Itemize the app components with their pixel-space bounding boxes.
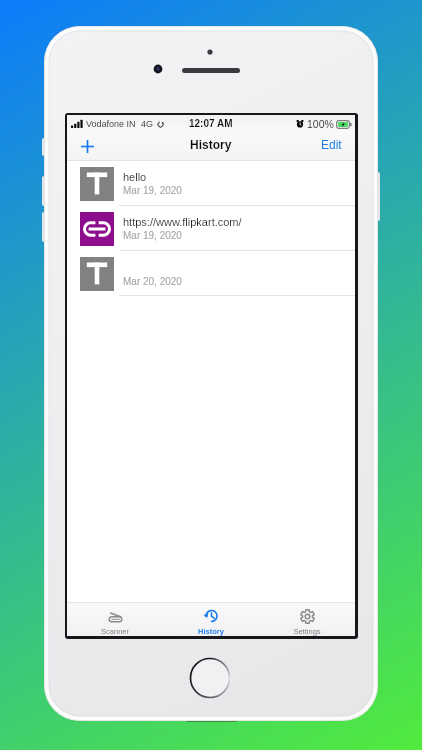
button[interactable]: History <box>163 602 259 636</box>
staticText: Mar 19, 2020 <box>123 230 182 241</box>
staticText: History <box>198 627 224 635</box>
button[interactable]: hello <box>67 161 355 206</box>
staticText: Edit <box>321 138 342 151</box>
staticText: 100% <box>307 118 334 130</box>
button[interactable]: Scanner <box>67 602 163 636</box>
staticText: Vodafone IN <box>86 119 136 129</box>
staticText: Mar 20, 2020 <box>123 276 182 287</box>
staticText: Mar 19, 2020 <box>123 185 182 196</box>
button[interactable]: Add <box>73 132 101 160</box>
button[interactable]: Settings <box>259 602 355 636</box>
staticText: hello <box>123 171 147 183</box>
button[interactable]: Mar 20, 2020 <box>67 251 355 296</box>
staticText: Scanner <box>101 627 129 635</box>
staticText: History <box>190 138 232 151</box>
staticText: 12:07 AM <box>189 118 233 129</box>
button[interactable]: Edit <box>312 133 355 156</box>
button[interactable]: https://www.flipkart.com/ <box>67 206 355 251</box>
staticText: 4G <box>141 119 154 129</box>
staticText: https://www.flipkart.com/ <box>123 216 242 228</box>
staticText: Settings <box>293 627 321 635</box>
